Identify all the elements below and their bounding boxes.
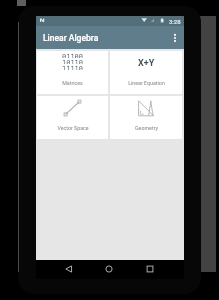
button[interactable]: Recent apps — [138, 259, 162, 278]
staticText: 10110 — [62, 58, 84, 64]
button[interactable]: 01100 — [37, 51, 108, 94]
staticText: 11110 — [62, 64, 84, 70]
staticText: 3:28 — [169, 18, 181, 25]
button[interactable]: Vector Space — [37, 96, 108, 139]
button[interactable]: Home — [97, 259, 121, 278]
staticText: Linear Equation — [128, 80, 165, 86]
button[interactable]: Back — [57, 259, 81, 278]
staticText: Matrices — [62, 80, 83, 86]
staticText: Geometry — [135, 125, 158, 131]
button[interactable]: Geometry — [110, 96, 182, 139]
staticText: Vector Space — [57, 125, 89, 131]
button[interactable]: More options — [166, 26, 184, 49]
staticText: X+Y — [138, 58, 155, 69]
staticText: Linear Algebra — [43, 33, 99, 43]
button[interactable]: X+Y — [110, 51, 182, 94]
staticText: 01100 — [62, 52, 84, 58]
